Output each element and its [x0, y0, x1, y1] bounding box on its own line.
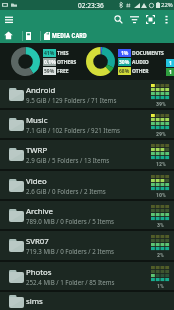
staticText: 1% — [121, 50, 129, 57]
staticText: 10% — [156, 191, 166, 198]
button[interactable]: Archive — [0, 201, 174, 229]
staticText: 30% — [119, 59, 130, 66]
staticText: 719.3 MiB / 0 Folders / 2 Items — [26, 247, 114, 255]
button[interactable]: More options — [158, 11, 174, 27]
staticText: TWRP — [26, 145, 48, 156]
staticText: 22% — [161, 1, 173, 9]
staticText: MEDIA CARD — [52, 32, 87, 40]
staticText: 2% — [157, 251, 164, 258]
button[interactable]: Home — [0, 28, 22, 43]
button[interactable]: Video — [0, 171, 174, 199]
button[interactable]: Menu — [0, 11, 17, 28]
button[interactable]: Photos — [0, 262, 174, 290]
staticText: THIS — [57, 50, 69, 57]
staticText: 02:23:36 — [78, 1, 104, 10]
staticText: 252.4 MiB / 1 Folder / 85 Items — [26, 278, 115, 286]
button[interactable]: Android — [0, 80, 174, 108]
staticText: Archive — [26, 206, 53, 217]
staticText: 12% — [156, 160, 166, 167]
button[interactable]: Music — [0, 110, 174, 138]
staticText: OTHERS — [57, 59, 77, 66]
staticText: 3% — [157, 221, 164, 228]
staticText: Video — [26, 176, 47, 187]
staticText: AUDIO — [132, 59, 149, 66]
button[interactable]: sims — [0, 292, 174, 310]
staticText: Music — [26, 115, 48, 126]
staticText: 41% — [44, 50, 55, 57]
button[interactable]: Search — [110, 11, 126, 27]
staticText: 1% — [157, 282, 164, 289]
staticText: 2.6 GiB / 0 Folders / 2 Items — [26, 187, 106, 195]
staticText: 59% — [44, 68, 55, 75]
staticText: SVR07 — [26, 236, 49, 247]
staticText: 7.1 GiB / 102 Folders / 921 Items — [26, 126, 120, 134]
staticText: FREE — [57, 68, 69, 75]
staticText: 1 — [169, 69, 172, 76]
staticText: Android — [26, 85, 56, 96]
button[interactable]: Internal storage — [23, 28, 40, 43]
staticText: 39% — [156, 100, 166, 107]
staticText: OTHER — [132, 68, 149, 75]
staticText: 0.1% — [44, 59, 56, 66]
button[interactable]: Sort — [126, 11, 142, 27]
button[interactable]: MEDIA CARD — [41, 32, 91, 40]
staticText: 29% — [156, 130, 166, 137]
staticText: 2.9 GiB / 5 Folders / 13 Items — [26, 156, 110, 164]
staticText: DOCUMENTS — [132, 50, 164, 57]
staticText: Photos — [26, 267, 52, 278]
button[interactable]: SVR07 — [0, 231, 174, 260]
button[interactable]: Select all — [142, 11, 158, 27]
staticText: sims — [26, 296, 43, 307]
button[interactable]: TWRP — [0, 140, 174, 169]
staticText: 68% — [119, 68, 130, 75]
staticText: 789.0 MiB / 0 Folders / 5 Items — [26, 217, 114, 225]
staticText: 1 — [169, 60, 172, 67]
staticText: 9.5 GiB / 129 Folders / 71 Items — [26, 96, 117, 104]
